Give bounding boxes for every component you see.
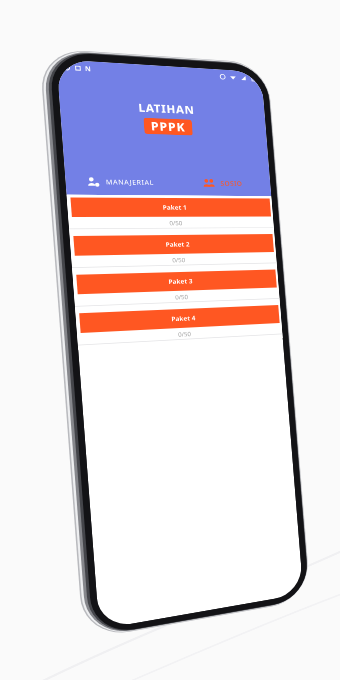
staticText: Paket 2 — [133, 270, 169, 283]
button[interactable]: Paket 4 — [0, 372, 300, 429]
button[interactable]: SOSIO — [150, 161, 300, 201]
staticText: PPPK — [125, 82, 176, 107]
staticText: 0/50 — [141, 294, 160, 306]
button[interactable]: MANAJERIAL — [0, 161, 150, 201]
staticText: MANAJERIAL — [55, 174, 123, 188]
button[interactable]: Paket 2 — [0, 258, 300, 315]
staticText: Paket 3 — [133, 327, 169, 340]
staticText: SOSIO — [222, 174, 256, 188]
button[interactable]: Paket 3 — [0, 315, 300, 372]
button[interactable]: Paket 1 — [0, 201, 300, 258]
staticText: Paket 1 — [133, 213, 169, 226]
staticText: LATIHAN — [109, 55, 192, 78]
